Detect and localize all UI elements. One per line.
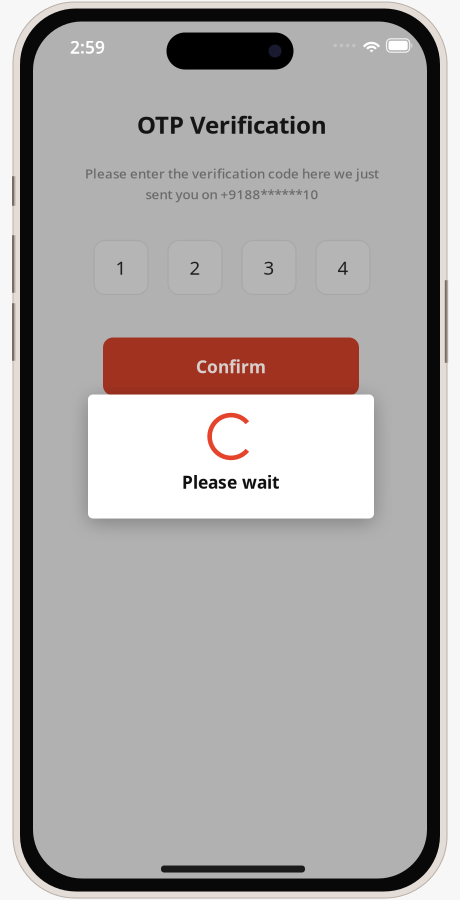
staticText: 2 <box>189 255 200 280</box>
button[interactable]: 3 <box>242 240 296 294</box>
staticText: 1 <box>115 255 126 280</box>
staticText: sent you on +9188******10 <box>145 185 318 203</box>
button[interactable]: 2 <box>168 240 222 294</box>
button[interactable]: 4 <box>316 240 370 294</box>
staticText: OTP Verification <box>137 109 327 140</box>
button[interactable]: 1 <box>94 240 148 294</box>
staticText: 3 <box>263 255 274 280</box>
staticText: Confirm <box>196 355 266 378</box>
button[interactable]: Confirm <box>103 337 359 395</box>
staticText: Please wait <box>182 470 280 493</box>
staticText: 4 <box>337 255 348 280</box>
staticText: 2:59 <box>70 35 105 58</box>
staticText: Please enter the verification code here … <box>85 164 379 182</box>
